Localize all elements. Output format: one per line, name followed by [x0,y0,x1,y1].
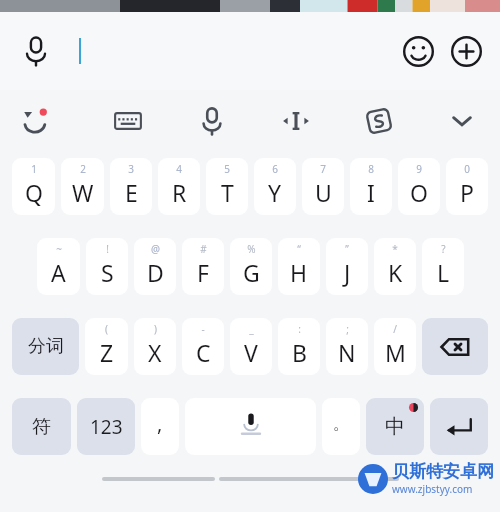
button[interactable]: , [141,398,179,455]
button[interactable]: % [230,238,272,295]
button[interactable]: 7 [302,158,344,215]
button[interactable]: _ [230,318,272,375]
button[interactable]: Voice input [12,27,60,75]
button[interactable]: Voice [188,97,236,145]
staticText: Y [268,177,282,208]
button[interactable]: - [182,318,224,375]
staticText: 贝斯特安卓网 [392,461,494,482]
button[interactable]: ~ [37,238,80,295]
staticText: 3 [128,162,134,176]
button[interactable]: Space, voice input [185,398,316,455]
staticText: O [410,177,428,208]
button[interactable]: ! [86,238,128,295]
staticText: 分词 [28,335,64,358]
staticText: L [437,257,450,288]
staticText: 1 [31,162,37,176]
button[interactable]: # [182,238,224,295]
staticText: J [344,257,351,288]
button[interactable]: 符 [12,398,71,455]
button[interactable]: 4 [158,158,200,215]
staticText: H [290,257,308,288]
button[interactable]: @ [134,238,176,295]
staticText: % [247,242,256,256]
button[interactable]: “ [278,238,320,295]
staticText: , [157,410,163,437]
button[interactable]: Enter [430,398,488,455]
button[interactable]: Sogou [355,97,403,145]
staticText: ) [154,322,157,336]
button[interactable]: 8 [350,158,392,215]
staticText: 中 [385,414,405,439]
staticText: Z [100,337,114,368]
button[interactable]: ” [326,238,368,295]
staticText: - [201,322,205,336]
staticText: _ [249,322,254,336]
button[interactable]: 中 [366,398,424,455]
button[interactable]: ) [134,318,176,375]
button[interactable]: Keyboard layout [104,97,152,145]
button[interactable]: / [374,318,416,375]
staticText: N [338,337,356,368]
button[interactable]: Hide keyboard [438,97,486,145]
staticText: ~ [56,242,62,256]
staticText: A [51,257,66,288]
button[interactable]: 123 [77,398,135,455]
staticText: G [243,257,260,288]
staticText: T [221,177,234,208]
staticText: M [385,337,406,368]
staticText: 6 [272,162,278,176]
staticText: : [298,322,301,336]
staticText: D [147,257,164,288]
staticText: ? [441,242,446,256]
staticText: E [125,177,138,208]
button[interactable]: More [442,27,490,75]
button[interactable]: 0 [446,158,488,215]
staticText: ” [345,242,349,256]
button[interactable]: 。 [322,398,360,455]
staticText: P [460,177,474,208]
staticText: S [101,257,114,288]
staticText: W [72,177,94,208]
staticText: # [200,242,207,256]
staticText: / [393,322,397,336]
staticText: I [367,177,375,208]
staticText: 符 [32,415,51,439]
staticText: 0 [464,162,470,176]
button[interactable]: 1 [12,158,55,215]
button[interactable]: ( [85,318,128,375]
staticText: U [315,177,332,208]
button[interactable]: * [374,238,416,295]
staticText: 8 [368,162,374,176]
staticText: ( [105,322,108,336]
button[interactable]: ? [422,238,464,295]
staticText: V [244,337,258,368]
button[interactable]: 9 [398,158,440,215]
staticText: B [292,337,307,368]
staticText: R [172,177,187,208]
staticText: ; [346,322,349,336]
button[interactable]: 分词 [12,318,79,375]
staticText: C [196,337,211,368]
staticText: 5 [224,162,230,176]
staticText: 123 [90,414,123,440]
button[interactable]: 2 [61,158,104,215]
staticText: www.zjbstyy.com [392,482,473,496]
button[interactable]: 5 [206,158,248,215]
button[interactable]: : [278,318,320,375]
staticText: 。 [333,414,349,434]
button[interactable]: Delete [422,318,488,375]
staticText: @ [151,242,160,256]
button[interactable]: Stickers [12,97,60,145]
button[interactable]: ; [326,318,368,375]
staticText: F [197,257,209,288]
staticText: “ [297,242,301,256]
button[interactable]: Emoji [394,27,442,75]
staticText: 9 [416,162,422,176]
staticText: Q [25,177,43,208]
button[interactable]: 6 [254,158,296,215]
staticText: ! [106,242,109,256]
button[interactable]: 3 [110,158,152,215]
staticText: 4 [176,162,182,176]
staticText: K [388,257,403,288]
button[interactable]: Move cursor [272,97,320,145]
